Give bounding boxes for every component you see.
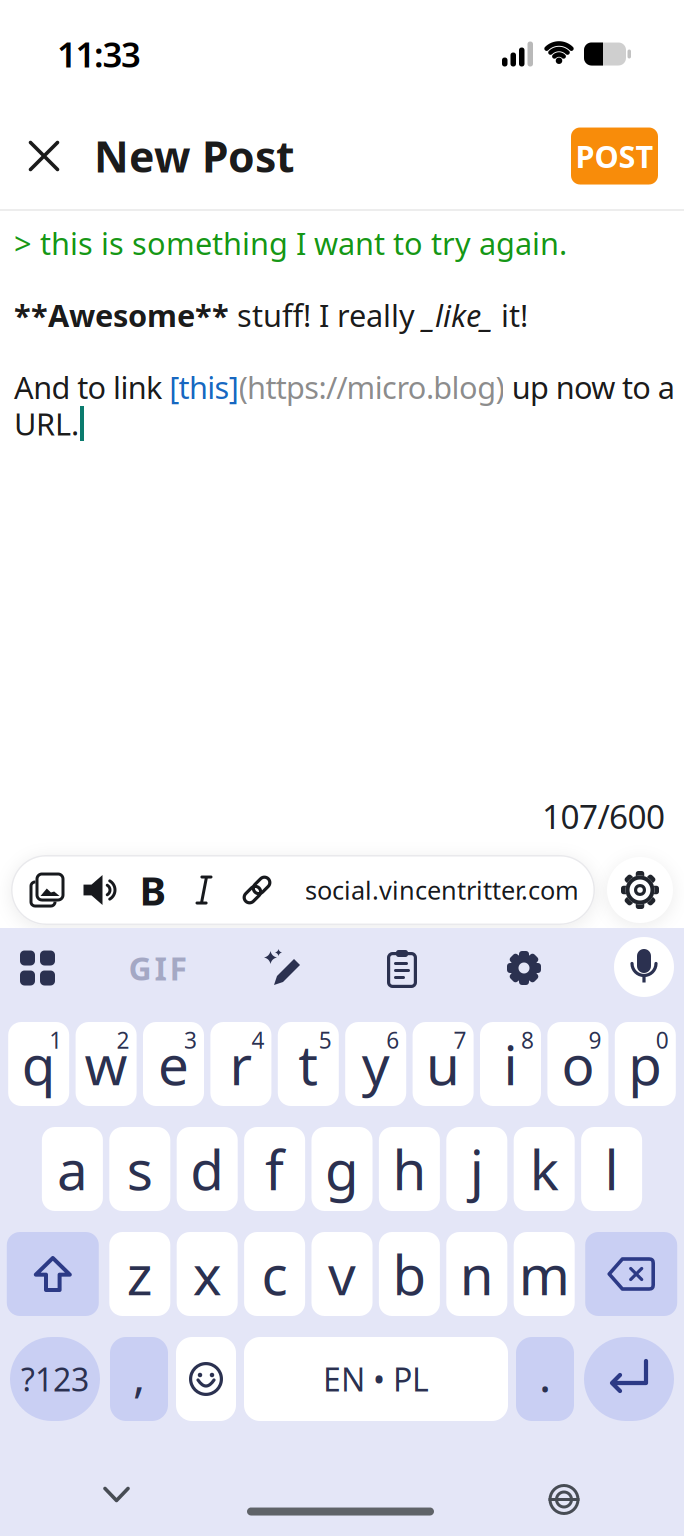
button[interactable]: x (177, 1232, 238, 1316)
staticText: > this is something I want to try again. (14, 223, 567, 263)
staticText: social.vincentritter.com (305, 873, 579, 907)
staticText: 107/600 (542, 794, 665, 838)
button[interactable]: 3 (143, 1022, 204, 1106)
button[interactable]: f (244, 1127, 305, 1211)
button[interactable]: GIF (128, 947, 187, 989)
button[interactable]: Settings (607, 857, 673, 923)
button[interactable]: n (446, 1232, 507, 1316)
button[interactable]: Voice typing (614, 937, 674, 997)
button[interactable]: 5 (278, 1022, 339, 1106)
button[interactable]: c (244, 1232, 305, 1316)
button[interactable]: b (379, 1232, 440, 1316)
staticText: p (628, 1028, 662, 1100)
button[interactable]: Insert link (229, 855, 285, 925)
staticText: ?123 (21, 1358, 89, 1400)
staticText: EN • PL (323, 1358, 429, 1400)
staticText: 9 (588, 1025, 601, 1055)
button[interactable]: social.vincentritter.com (305, 873, 579, 907)
button[interactable]: 8 (480, 1022, 541, 1106)
staticText: up now to a (504, 367, 675, 407)
staticText: r (229, 1028, 252, 1100)
button[interactable]: Change language (548, 1483, 580, 1515)
staticText: t (298, 1028, 318, 1100)
staticText: y (362, 1028, 390, 1100)
button[interactable]: a (42, 1127, 103, 1211)
staticText: 7 (454, 1025, 467, 1055)
button[interactable]: Apps (20, 950, 55, 985)
button[interactable]: Shift (7, 1232, 99, 1316)
button[interactable]: Italic (179, 855, 229, 925)
button[interactable]: m (514, 1232, 575, 1316)
staticText: 1 (49, 1025, 62, 1055)
button[interactable]: 9 (547, 1022, 608, 1106)
button[interactable]: h (379, 1127, 440, 1211)
staticText: (https://micro.blog) (239, 367, 504, 407)
button[interactable]: 6 (345, 1022, 406, 1106)
staticText: c (262, 1238, 288, 1310)
button[interactable]: 7 (413, 1022, 474, 1106)
button[interactable]: g (311, 1127, 372, 1211)
staticText: it! (493, 295, 528, 335)
button[interactable]: s (109, 1127, 170, 1211)
staticText: B (139, 863, 166, 916)
staticText: 11:33 (57, 31, 141, 77)
button[interactable]: POST (571, 127, 658, 184)
button[interactable]: 1 (8, 1022, 69, 1106)
staticText: k (530, 1133, 559, 1205)
button[interactable]: Read aloud (73, 855, 127, 925)
button[interactable]: Keyboard settings (506, 950, 542, 986)
button[interactable]: Close (30, 127, 58, 185)
staticText: i (503, 1028, 517, 1100)
button[interactable]: 4 (210, 1022, 271, 1106)
button[interactable]: Delete (585, 1232, 677, 1316)
staticText: New Post (94, 128, 295, 184)
staticText: 3 (184, 1025, 197, 1055)
button[interactable]: Bold (127, 855, 179, 925)
staticText: [this] (169, 367, 239, 407)
button[interactable]: Comma (110, 1337, 168, 1421)
button[interactable]: z (109, 1232, 170, 1316)
staticText: a (57, 1133, 88, 1205)
button[interactable]: Period (516, 1337, 574, 1421)
staticText: And to link (14, 367, 169, 407)
staticText: n (460, 1238, 494, 1310)
button[interactable]: j (446, 1127, 507, 1211)
button[interactable]: Emoji (176, 1337, 236, 1421)
button[interactable]: d (177, 1127, 238, 1211)
button[interactable]: Hide keyboard (105, 1488, 128, 1500)
staticText: h (392, 1133, 426, 1205)
staticText: z (127, 1238, 153, 1310)
staticText: 5 (319, 1025, 332, 1055)
staticText: v (328, 1238, 356, 1310)
staticText: 2 (117, 1025, 130, 1055)
button[interactable]: Return (584, 1337, 674, 1421)
button[interactable]: Clipboard (383, 949, 421, 987)
staticText: stuff! I really (229, 295, 423, 335)
staticText: u (426, 1028, 460, 1100)
button[interactable]: Magic compose (264, 949, 302, 987)
staticText: 0 (656, 1025, 669, 1055)
staticText: POST (575, 136, 653, 176)
staticText: 8 (521, 1025, 534, 1055)
staticText: f (265, 1133, 284, 1205)
staticText: j (470, 1133, 484, 1205)
staticText: l (605, 1133, 619, 1205)
button[interactable]: k (514, 1127, 575, 1211)
button[interactable]: 2 (76, 1022, 137, 1106)
button[interactable]: l (581, 1127, 642, 1211)
staticText: m (519, 1238, 570, 1310)
button[interactable]: Space (244, 1337, 508, 1421)
staticText: q (22, 1028, 56, 1100)
staticText: b (392, 1238, 426, 1310)
staticText: w (85, 1028, 128, 1100)
staticText: o (561, 1028, 594, 1100)
staticText: s (127, 1133, 153, 1205)
staticText: x (193, 1238, 222, 1310)
staticText: g (325, 1133, 359, 1205)
staticText: 4 (251, 1025, 264, 1055)
button[interactable]: Symbols (10, 1337, 100, 1421)
staticText: **Awesome** (14, 295, 229, 335)
button[interactable]: 0 (615, 1022, 676, 1106)
button[interactable]: v (311, 1232, 372, 1316)
button[interactable]: Add photo (21, 855, 73, 925)
